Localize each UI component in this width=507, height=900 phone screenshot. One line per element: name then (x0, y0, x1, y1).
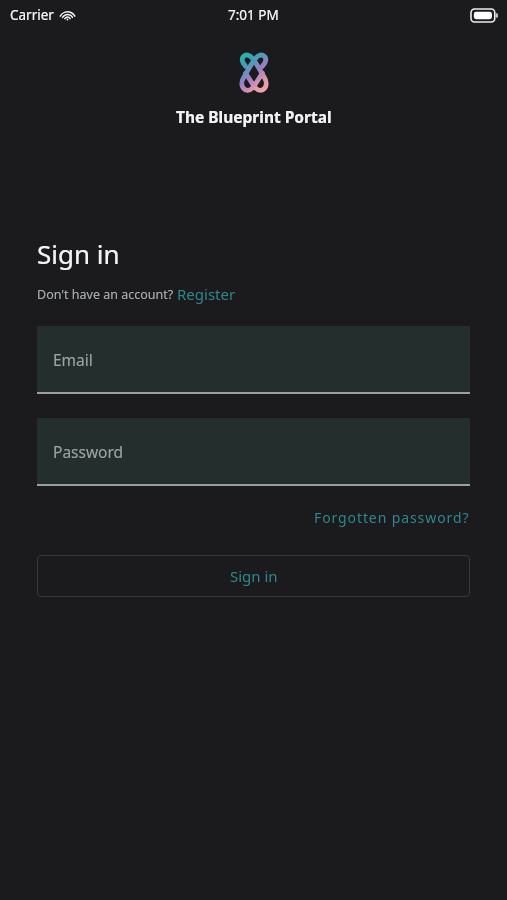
staticText: 7:01 PM (228, 6, 279, 24)
staticText: Sign in (230, 566, 278, 586)
button[interactable]: Register (177, 284, 236, 304)
button[interactable]: Sign in (37, 555, 470, 597)
staticText: The Blueprint Portal (176, 106, 332, 127)
button[interactable]: Email (37, 326, 470, 394)
staticText: Register (177, 284, 236, 304)
staticText: Carrier (10, 6, 54, 24)
button[interactable]: Password (37, 418, 470, 486)
button[interactable]: Forgotten password? (37, 508, 470, 527)
staticText: Forgotten password? (314, 508, 470, 527)
staticText: Password (53, 441, 124, 462)
staticText: Sign in (37, 236, 120, 271)
staticText: Don't have an account? (37, 286, 177, 303)
other: The Blueprint Portal logo (233, 52, 275, 94)
staticText: Email (53, 349, 93, 370)
